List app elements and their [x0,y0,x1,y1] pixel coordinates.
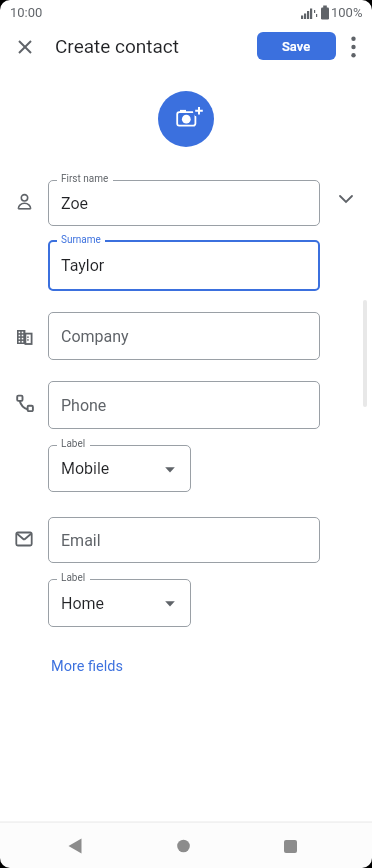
button[interactable] [262,822,322,868]
button[interactable] [340,33,366,61]
button[interactable]: Home [48,579,191,627]
staticText: Create contact [55,35,180,57]
staticText: Company [61,327,129,346]
button[interactable]: More fields [51,658,123,675]
button[interactable] [332,185,360,213]
button[interactable] [155,822,215,868]
staticText: Save [282,39,311,54]
button[interactable] [45,822,105,868]
button[interactable]: Zoe [48,180,320,226]
staticText: Home [61,594,105,613]
button[interactable]: Company [48,312,320,360]
button[interactable]: Save [257,32,336,60]
staticText: Zoe [61,194,89,213]
staticText: Surname [61,234,101,246]
button[interactable]: Taylor [48,240,320,291]
staticText: Label [61,438,86,450]
button[interactable]: Phone [48,381,320,429]
staticText: Email [61,531,101,550]
staticText: Phone [61,396,107,415]
staticText: Taylor [61,256,105,275]
staticText: Label [61,572,86,584]
button[interactable] [158,91,214,147]
staticText: More fields [51,658,123,675]
staticText: 10:00 [10,5,43,20]
button[interactable] [11,33,39,61]
staticText: Mobile [61,459,110,478]
staticText: 100% [331,5,363,20]
button[interactable]: Mobile [48,445,191,492]
staticText: First name [61,173,109,185]
button[interactable]: Email [48,517,320,563]
